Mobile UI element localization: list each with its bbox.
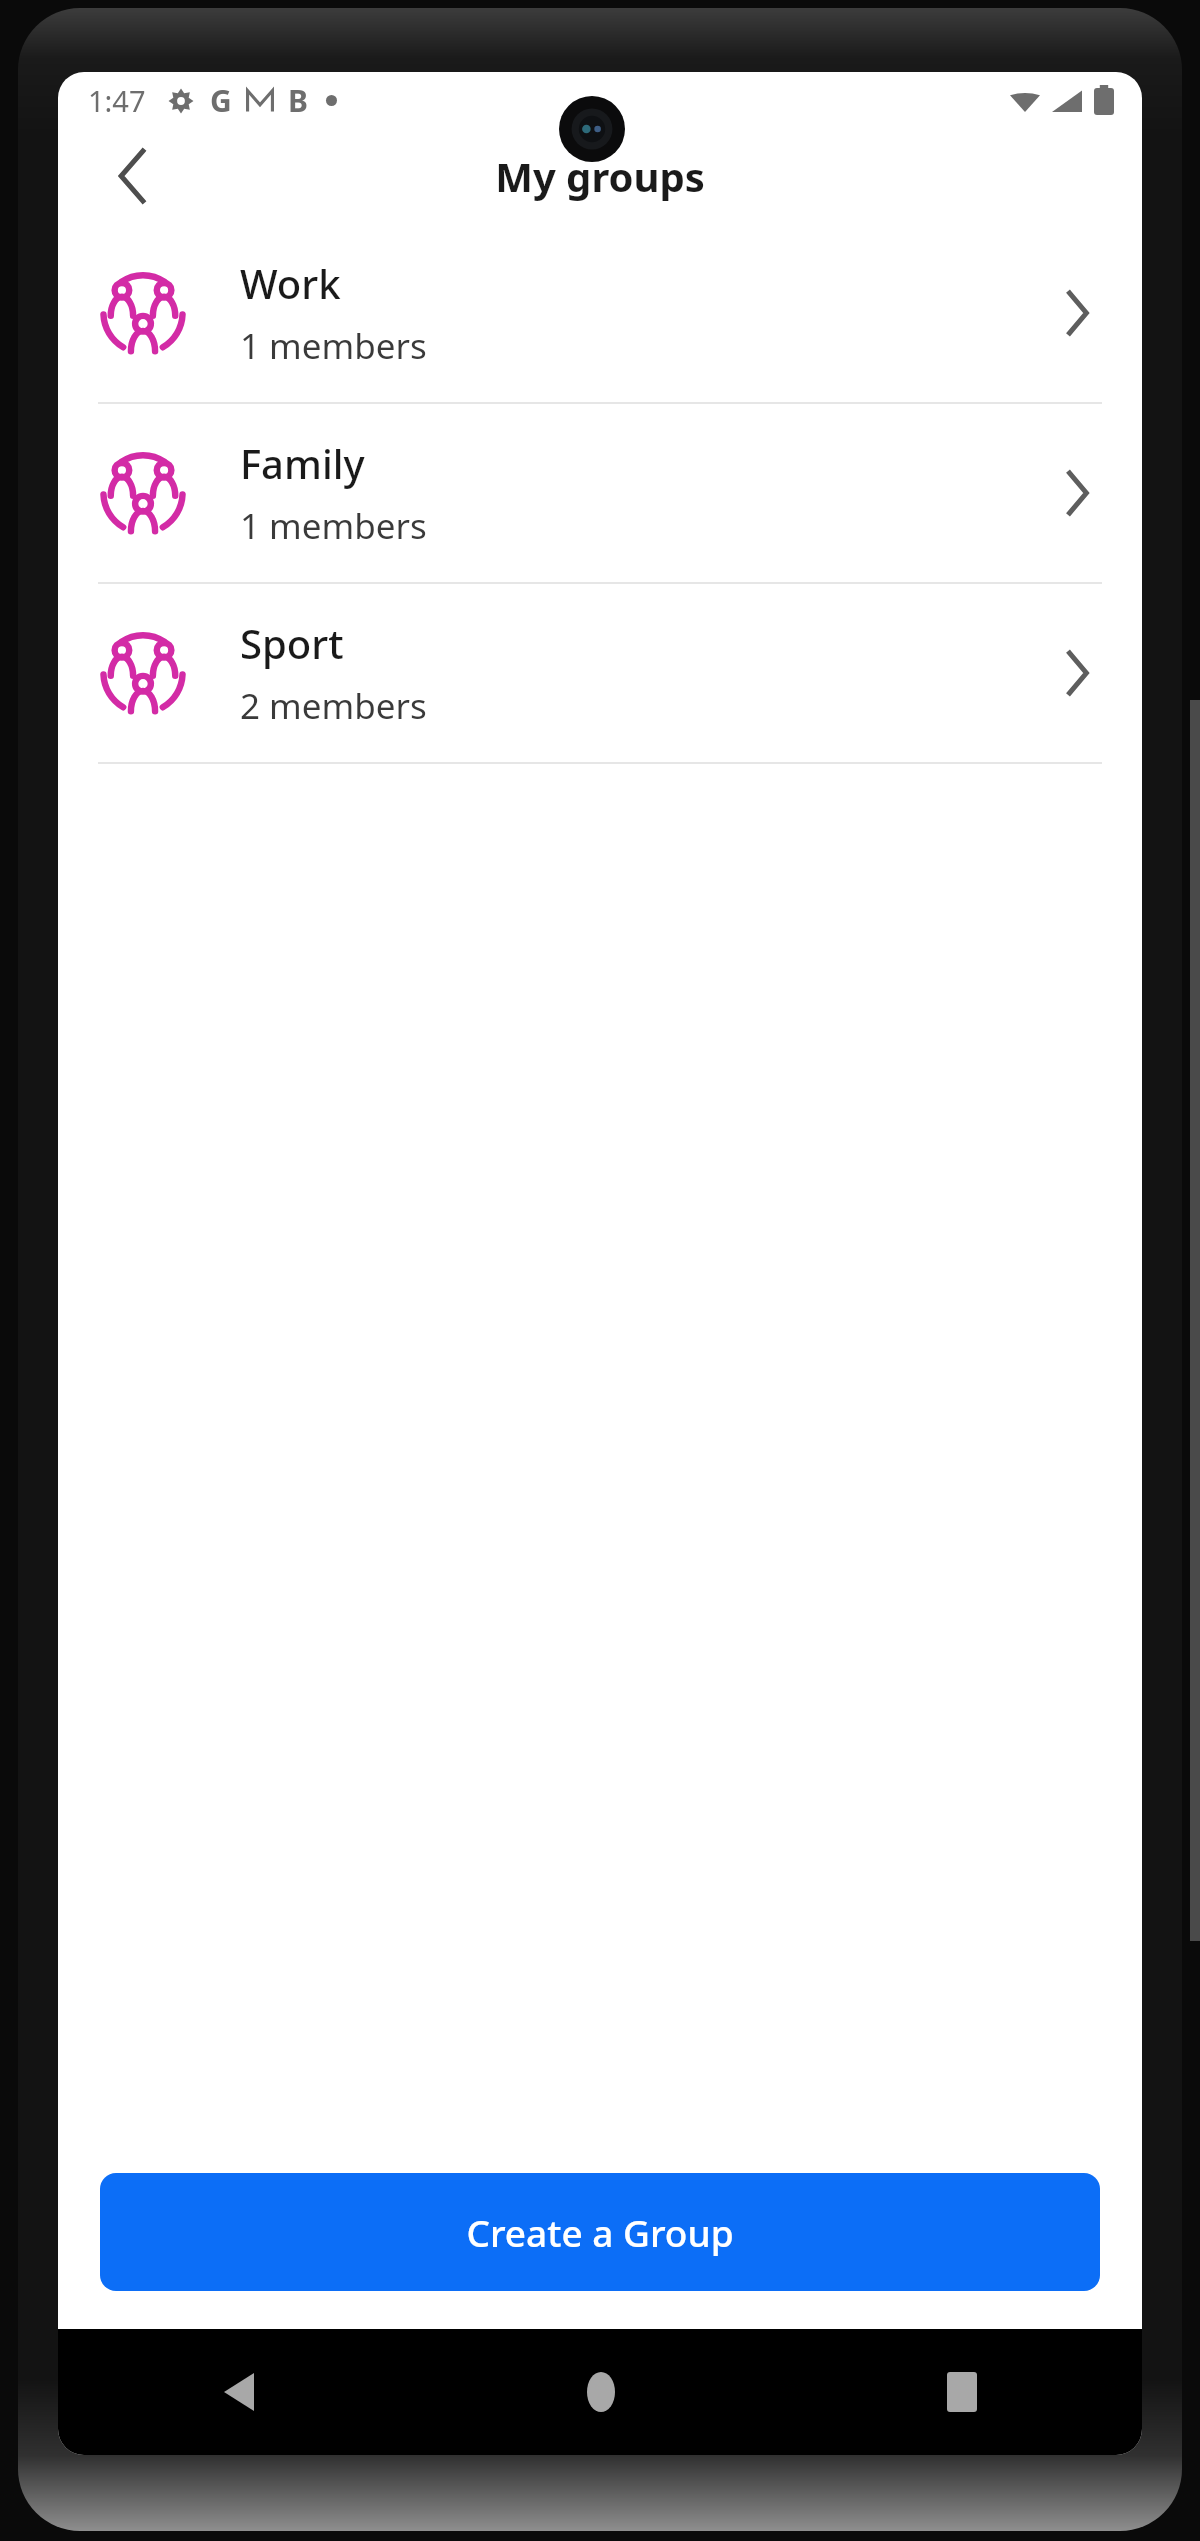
button[interactable]: Recent apps <box>781 2329 1142 2455</box>
button[interactable]: Back <box>58 2329 420 2455</box>
button[interactable]: Home <box>420 2329 781 2455</box>
button[interactable]: Back <box>100 144 164 208</box>
staticText: 1:47 <box>88 81 146 120</box>
staticText: 1 members <box>240 322 427 370</box>
staticText: My groups <box>495 149 705 203</box>
staticText: Family <box>240 436 365 490</box>
button[interactable]: Family <box>58 404 1142 582</box>
button[interactable]: Work <box>58 224 1142 402</box>
staticText: Sport <box>240 616 344 670</box>
staticText: B <box>288 80 308 121</box>
staticText: Work <box>240 256 341 310</box>
staticText: 2 members <box>240 682 427 730</box>
button[interactable]: Create a Group <box>100 2173 1100 2291</box>
staticText: Create a Group <box>466 2207 734 2257</box>
staticText: G <box>210 80 232 121</box>
staticText: 1 members <box>240 502 427 550</box>
button[interactable]: Sport <box>58 584 1142 762</box>
